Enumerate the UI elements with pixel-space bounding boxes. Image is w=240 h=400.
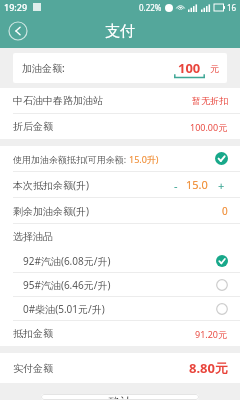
staticText: 0.22%: [139, 2, 162, 13]
staticText: 15.0升): [129, 153, 159, 165]
staticText: 95#汽油(6.46元/升): [23, 278, 111, 292]
button[interactable]: 确认: [41, 394, 199, 400]
staticText: 元: [210, 63, 219, 74]
button[interactable]: 本次抵扣余额(升): [0, 172, 240, 197]
button[interactable]: Decrease: [169, 178, 182, 191]
button[interactable]: Increase: [215, 178, 228, 191]
staticText: 100: [178, 59, 201, 77]
button[interactable]: 折后金额: [0, 114, 240, 139]
staticText: 抵扣金额: [13, 327, 53, 340]
staticText: 0#柴油(5.01元/升): [23, 302, 105, 316]
staticText: 暂无折扣: [192, 95, 228, 106]
button[interactable]: 选择油品: [0, 224, 240, 249]
staticText: 折后金额: [13, 120, 53, 133]
staticText: 支付: [105, 22, 135, 41]
button[interactable]: Back: [8, 21, 28, 41]
button[interactable]: 剩余加油余额(升): [0, 198, 240, 223]
staticText: 100.00元: [190, 121, 228, 133]
staticText: 15.0: [186, 177, 208, 192]
staticText: 16: [227, 2, 237, 13]
staticText: 中石油中春路加油站: [13, 94, 103, 107]
staticText: -: [174, 178, 178, 191]
staticText: 加油金额:: [22, 61, 65, 75]
staticText: 使用加油余额抵扣(可用余额:: [13, 153, 129, 165]
staticText: 92#汽油(6.08元/升): [23, 254, 111, 268]
staticText: 确认: [108, 394, 132, 400]
button[interactable]: 使用加油余额抵扣(可用余额:: [0, 146, 240, 171]
staticText: 91.20元: [195, 328, 228, 340]
staticText: 本次抵扣余额(升): [13, 178, 89, 192]
staticText: 8.80元: [189, 359, 228, 377]
button[interactable]: 抵扣金额: [0, 321, 240, 346]
button[interactable]: 中石油中春路加油站: [0, 88, 240, 113]
staticText: 19:29: [4, 1, 28, 13]
button[interactable]: 95#汽油(6.46元/升): [0, 273, 240, 296]
button[interactable]: 实付金额: [0, 353, 240, 383]
staticText: 选择油品: [13, 230, 53, 243]
staticText: 剩余加油余额(升): [13, 204, 89, 218]
button[interactable]: 92#汽油(6.08元/升): [0, 249, 240, 272]
staticText: 实付金额: [13, 362, 53, 375]
button[interactable]: 加油金额:: [13, 53, 227, 83]
button[interactable]: 0#柴油(5.01元/升): [0, 297, 240, 320]
staticText: +: [218, 178, 225, 191]
staticText: 0: [222, 204, 228, 218]
